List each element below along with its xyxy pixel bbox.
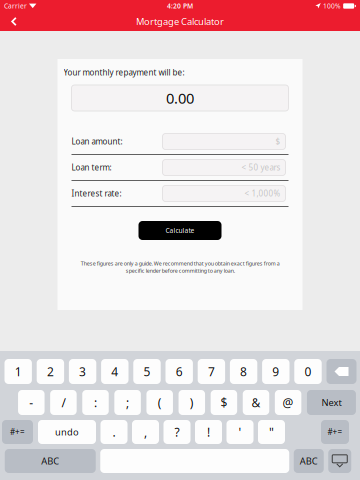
button[interactable]: Next — [307, 390, 356, 415]
staticText: < 50 years — [241, 162, 280, 173]
button[interactable]: ! — [195, 420, 222, 444]
button[interactable]: 8 — [230, 359, 257, 384]
staticText: @ — [283, 394, 294, 410]
staticText: 9 — [272, 363, 279, 379]
staticText: ' — [238, 424, 241, 440]
staticText: 5 — [143, 363, 150, 379]
staticText: 6 — [176, 363, 183, 379]
staticText: ; — [126, 394, 129, 410]
button[interactable]: ' — [226, 420, 253, 444]
button[interactable]: 2 — [37, 359, 64, 384]
staticText: < 1,000% — [244, 188, 280, 199]
staticText: ? — [174, 424, 179, 440]
staticText: Carrier — [4, 2, 27, 10]
staticText: , — [144, 424, 147, 440]
staticText: 100% — [323, 2, 341, 10]
staticText: Loan amount: — [71, 136, 122, 147]
staticText: ! — [207, 424, 210, 440]
staticText: $ — [275, 136, 280, 147]
button[interactable]: #+= — [2, 420, 33, 444]
staticText: 0.00 — [166, 88, 194, 108]
staticText: 4 — [111, 363, 118, 379]
button[interactable]: ; — [114, 390, 141, 415]
staticText: Calculate — [165, 226, 194, 235]
button[interactable]: / — [50, 390, 77, 415]
staticText: : — [94, 394, 97, 410]
button[interactable]: Back — [5, 11, 23, 32]
button[interactable]: undo — [38, 420, 96, 444]
staticText: Next — [321, 396, 341, 409]
button[interactable]: @ — [275, 390, 301, 415]
button[interactable]: ? — [163, 420, 190, 444]
button[interactable]: : — [82, 390, 109, 415]
staticText: 3 — [79, 363, 86, 379]
button[interactable]: Calculate — [138, 221, 221, 240]
staticText: Your monthly repayment will be: — [63, 67, 184, 78]
button[interactable]: , — [132, 420, 159, 444]
staticText: / — [61, 394, 65, 410]
staticText: 7 — [208, 363, 215, 379]
staticText: 2 — [47, 363, 54, 379]
staticText: $ — [220, 394, 227, 410]
staticText: ) — [190, 394, 194, 410]
staticText: " — [269, 424, 274, 440]
staticText: . — [112, 424, 115, 440]
button[interactable]: 6 — [165, 359, 193, 384]
staticText: #+= — [327, 427, 342, 437]
staticText: These figures are only a guide. We recom… — [80, 260, 279, 274]
staticText: ABC — [300, 455, 318, 467]
button[interactable]: . — [100, 420, 127, 444]
button[interactable]: $ — [211, 390, 237, 415]
staticText: & — [251, 394, 260, 410]
staticText: - — [29, 394, 33, 410]
staticText: 0 — [304, 363, 311, 379]
staticText: Mortgage Calculator — [136, 15, 224, 28]
button[interactable]: ABC — [5, 449, 96, 473]
button[interactable]: 5 — [133, 359, 161, 384]
staticText: 1 — [15, 363, 22, 379]
button[interactable]: Hide keyboard — [328, 449, 351, 473]
button[interactable]: - — [18, 390, 45, 415]
button[interactable]: 7 — [198, 359, 225, 384]
button[interactable]: 1 — [4, 359, 32, 384]
button[interactable]: & — [243, 390, 269, 415]
staticText: undo — [55, 426, 79, 438]
button[interactable]: ABC — [294, 449, 324, 473]
staticText: 8 — [240, 363, 247, 379]
staticText: 4:20 PM — [167, 2, 193, 10]
button[interactable]: #+= — [321, 420, 349, 444]
button[interactable]: ) — [179, 390, 205, 415]
button[interactable]: 9 — [262, 359, 289, 384]
staticText: Loan term: — [71, 162, 111, 173]
button[interactable]: 0 — [294, 359, 322, 384]
staticText: ABC — [41, 455, 59, 467]
button[interactable]: ( — [146, 390, 173, 415]
staticText: Interest rate: — [71, 188, 121, 199]
button[interactable]: Delete — [326, 359, 356, 384]
staticText: ( — [158, 394, 162, 410]
button[interactable]: " — [258, 420, 285, 444]
staticText: #+= — [10, 427, 25, 437]
button[interactable]: 4 — [101, 359, 128, 384]
button[interactable]: 3 — [69, 359, 96, 384]
